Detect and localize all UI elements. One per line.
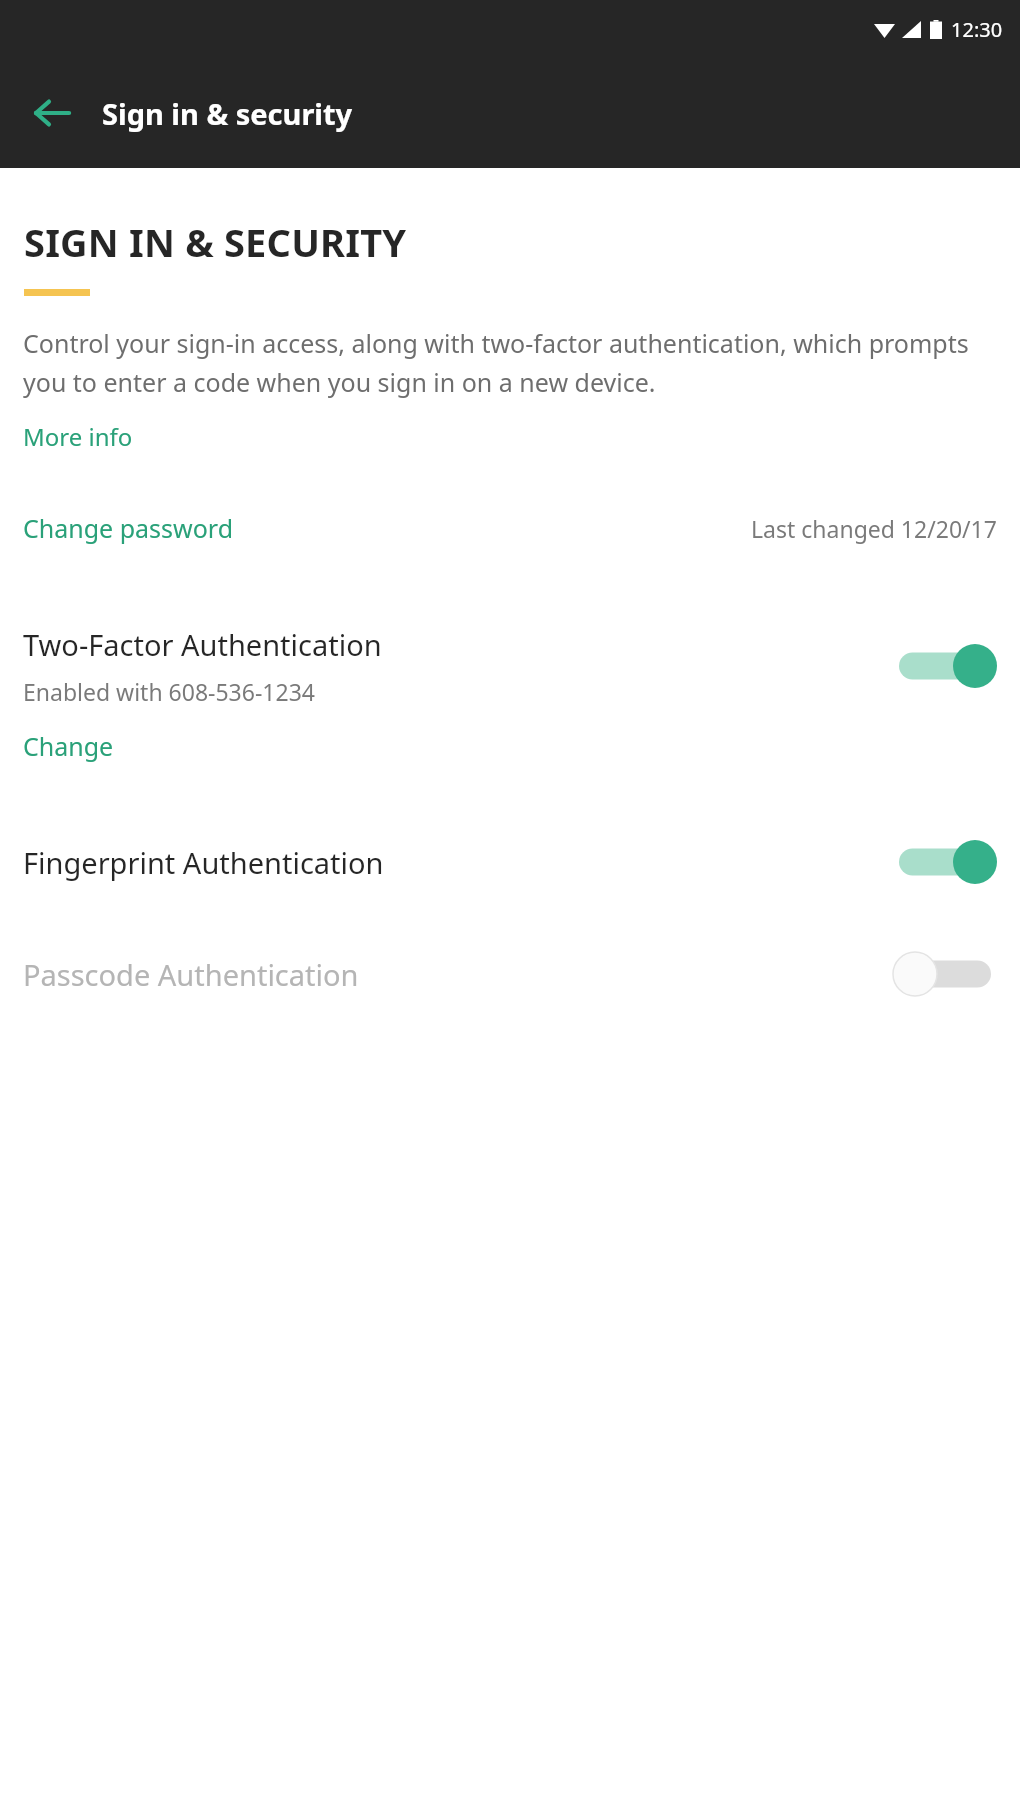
button[interactable]: More info [23, 420, 133, 453]
staticText: Enabled with 608-536-1234 [23, 676, 315, 707]
staticText: Fingerprint Authentication [23, 843, 879, 882]
staticText: SIGN IN & SECURITY [24, 216, 407, 268]
staticText: Last changed 12/20/17 [751, 513, 997, 544]
staticText: 12:30 [951, 16, 1003, 43]
staticText: Passcode Authentication [23, 955, 879, 994]
button[interactable]: Change password [23, 511, 234, 545]
button[interactable]: Fingerprint Authentication [23, 835, 997, 889]
staticText: Sign in & security [102, 94, 353, 133]
button[interactable]: Back [24, 85, 80, 141]
staticText: More info [23, 420, 133, 453]
button[interactable]: Fingerprint Authentication [893, 835, 997, 889]
staticText: Change password [23, 511, 234, 545]
button[interactable]: Change [23, 729, 114, 763]
staticText: Control your sign-in access, along with … [23, 326, 977, 400]
staticText: Two-Factor Authentication [23, 625, 382, 664]
staticText: Change [23, 729, 114, 763]
button[interactable]: Passcode Authentication [23, 947, 997, 1001]
button[interactable]: Two-Factor Authentication [893, 639, 997, 693]
button[interactable]: Two-Factor Authentication [23, 625, 997, 707]
button[interactable]: Passcode Authentication [893, 947, 997, 1001]
